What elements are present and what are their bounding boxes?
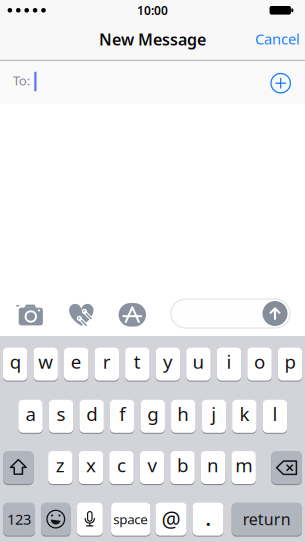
button[interactable]: return (232, 503, 302, 536)
staticText: Cancel (255, 29, 300, 49)
button[interactable]: w (33, 348, 58, 381)
button[interactable]: j (202, 400, 226, 433)
button[interactable]: a (18, 400, 43, 433)
button[interactable]: y (156, 348, 180, 381)
button[interactable]: m (231, 451, 256, 484)
staticText: 10:00 (137, 2, 168, 18)
staticText: @ (162, 505, 181, 533)
button[interactable]: l (263, 400, 287, 433)
button[interactable]: x (79, 451, 103, 484)
button[interactable]: . (193, 503, 223, 536)
staticText: j (211, 401, 216, 426)
button[interactable]: h (171, 400, 195, 433)
button[interactable]: Delete (271, 451, 302, 484)
staticText: n (207, 452, 219, 477)
staticText: d (86, 401, 97, 426)
button[interactable]: d (79, 400, 104, 433)
button[interactable]: App Store (119, 303, 146, 327)
staticText: l (272, 401, 277, 426)
button[interactable]: Camera (16, 304, 44, 326)
staticText: m (235, 452, 252, 477)
staticText: q (10, 349, 21, 374)
staticText: g (147, 401, 158, 426)
staticText: . (205, 501, 211, 533)
button[interactable]: g (140, 400, 165, 433)
staticText: e (71, 349, 82, 374)
button[interactable]: space (111, 503, 150, 536)
button[interactable]: Send (262, 301, 287, 326)
button[interactable]: r (95, 348, 119, 381)
button[interactable]: i (217, 348, 241, 381)
staticText: a (25, 401, 35, 426)
button[interactable]: c (109, 451, 134, 484)
button[interactable]: v (140, 451, 164, 484)
staticText: w (38, 349, 53, 374)
button[interactable]: Add Contact (271, 73, 290, 93)
staticText: v (147, 452, 156, 477)
button[interactable]: u (186, 348, 211, 381)
staticText: r (103, 349, 111, 374)
staticText: k (239, 401, 249, 426)
button[interactable]: Emoji (41, 503, 70, 536)
staticText: c (117, 452, 126, 477)
staticText: p (285, 349, 296, 374)
staticText: s (57, 401, 66, 426)
button[interactable]: Cancel (255, 29, 300, 49)
button[interactable]: Dictate (77, 503, 103, 536)
staticText: f (119, 401, 125, 426)
button[interactable]: t (125, 348, 149, 381)
staticText: 123 (7, 509, 31, 529)
staticText: z (56, 452, 65, 477)
staticText: b (177, 452, 188, 477)
button[interactable]: n (201, 451, 225, 484)
staticText: New Message (99, 29, 206, 50)
button[interactable]: k (232, 400, 257, 433)
button[interactable]: e (64, 348, 88, 381)
staticText: t (134, 349, 141, 374)
button[interactable]: f (110, 400, 134, 433)
staticText: h (177, 401, 189, 426)
button[interactable]: s (49, 400, 73, 433)
staticText: o (254, 349, 265, 374)
button[interactable]: q (3, 348, 27, 381)
button[interactable]: z (48, 451, 72, 484)
button[interactable]: Shift (3, 451, 34, 484)
staticText: i (226, 349, 231, 374)
button[interactable]: o (247, 348, 272, 381)
button[interactable]: b (170, 451, 195, 484)
staticText: return (243, 508, 291, 530)
staticText: x (86, 452, 96, 477)
staticText: space (113, 510, 148, 528)
button[interactable]: p (278, 348, 302, 381)
staticText: To: (13, 71, 31, 89)
staticText: u (192, 349, 204, 374)
button[interactable]: Digital Touch (68, 303, 95, 327)
staticText: y (163, 349, 173, 374)
button[interactable]: 123 (3, 503, 35, 536)
button[interactable]: @ (155, 503, 187, 536)
